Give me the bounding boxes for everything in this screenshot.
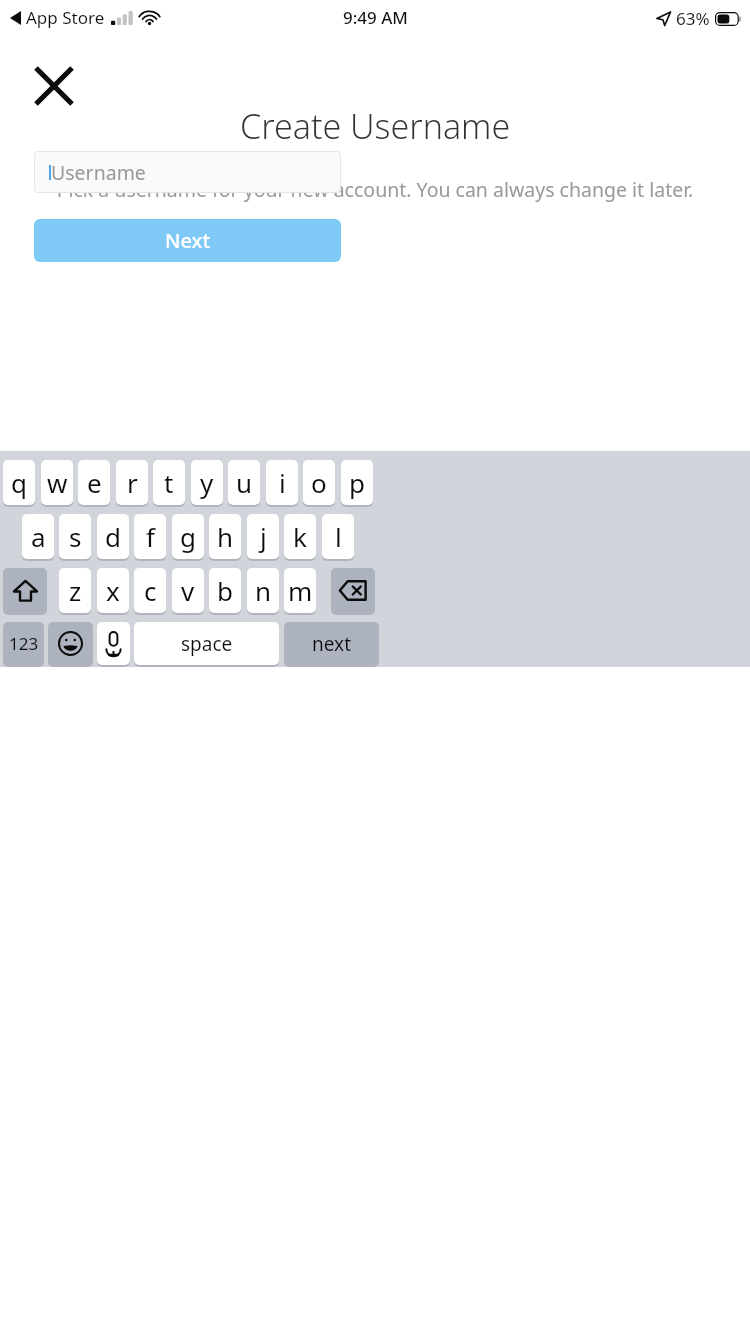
staticText: i (279, 465, 286, 500)
staticText: u (236, 465, 253, 500)
button[interactable]: Username (34, 151, 341, 193)
button[interactable]: 123 (3, 622, 44, 665)
staticText: q (11, 465, 27, 500)
button[interactable]: l (322, 514, 354, 559)
staticText: d (105, 519, 121, 554)
button[interactable]: r (116, 460, 148, 505)
button[interactable]: b (209, 568, 241, 613)
button[interactable]: space (134, 622, 279, 665)
staticText: h (217, 519, 234, 554)
staticText: e (87, 465, 102, 500)
button[interactable]: key (97, 622, 130, 665)
button[interactable]: y (191, 460, 223, 505)
staticText: App Store (26, 6, 105, 29)
button[interactable]: v (172, 568, 204, 613)
staticText: Username (51, 159, 146, 186)
button[interactable]: key (3, 568, 47, 613)
staticText: t (164, 465, 174, 500)
button[interactable]: q (3, 460, 35, 505)
staticText: n (255, 573, 272, 608)
staticText: y (200, 465, 214, 500)
staticText: 63% (676, 7, 710, 30)
button[interactable]: g (172, 514, 204, 559)
button[interactable]: p (341, 460, 373, 505)
button[interactable]: w (41, 460, 73, 505)
button[interactable]: Next (34, 219, 341, 262)
button[interactable]: k (284, 514, 316, 559)
button[interactable]: z (59, 568, 91, 613)
button[interactable]: a (22, 514, 54, 559)
staticText: 9:49 AM (343, 6, 408, 29)
staticText: m (288, 573, 313, 608)
button[interactable]: key (331, 568, 375, 613)
button[interactable]: next (284, 622, 379, 665)
staticText: c (144, 573, 157, 608)
button[interactable]: n (247, 568, 279, 613)
staticText: z (69, 573, 82, 608)
button[interactable]: f (134, 514, 166, 559)
staticText: 123 (9, 632, 39, 655)
staticText: Pick a username for your new account. Yo… (53, 176, 697, 203)
button[interactable]: o (303, 460, 335, 505)
staticText: k (293, 519, 307, 554)
button[interactable]: m (284, 568, 316, 613)
staticText: v (181, 573, 195, 608)
staticText: g (180, 519, 196, 554)
button[interactable]: t (153, 460, 185, 505)
staticText: space (181, 631, 233, 657)
button[interactable]: j (247, 514, 279, 559)
button[interactable]: e (78, 460, 110, 505)
button[interactable]: s (59, 514, 91, 559)
button[interactable]: d (97, 514, 129, 559)
staticText: Create Username (240, 103, 511, 149)
button[interactable]: key (48, 622, 93, 665)
staticText: x (106, 573, 120, 608)
button[interactable]: x (97, 568, 129, 613)
staticText: Next (165, 227, 211, 254)
staticText: next (312, 631, 351, 657)
button[interactable]: u (228, 460, 260, 505)
button[interactable]: Close (18, 50, 90, 122)
staticText: a (31, 519, 46, 554)
staticText: j (260, 519, 267, 554)
staticText: r (127, 465, 138, 500)
button[interactable]: h (209, 514, 241, 559)
staticText: w (47, 465, 68, 500)
staticText: l (335, 519, 342, 554)
staticText: o (311, 465, 327, 500)
button[interactable]: i (266, 460, 298, 505)
button[interactable]: c (134, 568, 166, 613)
staticText: b (217, 573, 233, 608)
staticText: p (349, 465, 365, 500)
staticText: f (146, 519, 155, 554)
staticText: s (69, 519, 82, 554)
